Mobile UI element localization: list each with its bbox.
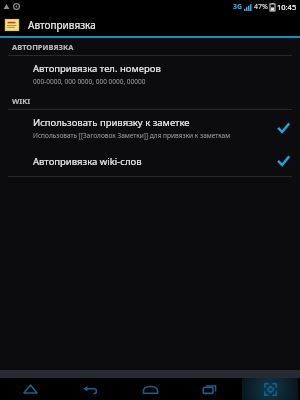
staticText: WIKI xyxy=(12,96,31,106)
staticText: Автопривязка тел. номеров xyxy=(33,62,161,75)
button[interactable]: Back xyxy=(60,378,120,400)
button[interactable]: Автопривязка тел. номеров xyxy=(0,56,300,92)
button[interactable]: Toggle Использовать привязку к заметке xyxy=(274,119,292,137)
button[interactable]: Toggle Автопривязка wiki-слов xyxy=(274,152,292,170)
staticText: АВТОПРИВЯЗКА xyxy=(12,42,74,52)
staticText: Автопривязка wiki-слов xyxy=(33,155,142,168)
button[interactable]: Menu xyxy=(0,378,60,400)
button[interactable]: Автопривязка wiki-слов xyxy=(0,146,300,176)
button[interactable]: Home xyxy=(120,378,180,400)
button[interactable]: Screenshot xyxy=(240,378,300,400)
staticText: 10:45 xyxy=(277,2,297,12)
staticText: Автопривязка xyxy=(28,18,96,32)
staticText: 3G xyxy=(233,2,243,12)
staticText: Использовать привязку к заметке xyxy=(33,116,190,129)
staticText: 000-0000, 000 0000, 000 0000, 00000 xyxy=(33,77,146,86)
button[interactable]: Использовать привязку к заметке xyxy=(0,110,300,146)
staticText: 47% xyxy=(254,2,268,12)
staticText: Использовать [[Заголовок Заметки]] для п… xyxy=(33,131,231,140)
button[interactable]: Recents xyxy=(180,378,240,400)
